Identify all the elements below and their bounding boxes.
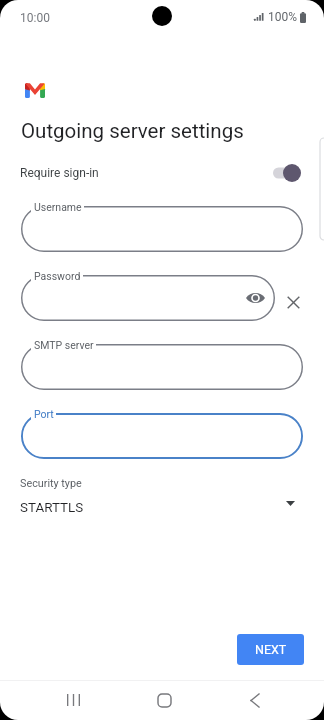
staticText: 10:00: [20, 11, 50, 25]
button[interactable]: Port: [21, 413, 303, 459]
button[interactable]: SMTP server: [21, 344, 303, 390]
button[interactable]: [265, 162, 301, 184]
button[interactable]: Show password: [246, 291, 265, 305]
staticText: STARTTLS: [20, 500, 84, 516]
staticText: Security type: [20, 477, 82, 490]
button[interactable]: Password: [21, 275, 275, 321]
staticText: 100%: [268, 10, 298, 24]
button[interactable]: Require sign-in: [0, 158, 324, 188]
button[interactable]: Clear password: [285, 294, 302, 311]
staticText: Password: [34, 270, 81, 282]
staticText: Username: [34, 201, 82, 213]
button[interactable]: Select security type: [280, 495, 301, 513]
button[interactable]: Username: [21, 206, 303, 252]
button[interactable]: STARTTLS: [0, 495, 324, 520]
staticText: Outgoing server settings: [21, 119, 244, 143]
staticText: Require sign-in: [20, 166, 99, 180]
button[interactable]: Back: [233, 678, 277, 720]
button[interactable]: Home: [142, 678, 186, 720]
button[interactable]: NEXT: [237, 634, 304, 665]
staticText: SMTP server: [34, 339, 94, 351]
button[interactable]: Recents: [51, 678, 95, 720]
staticText: Port: [34, 408, 54, 420]
staticText: NEXT: [255, 642, 287, 657]
